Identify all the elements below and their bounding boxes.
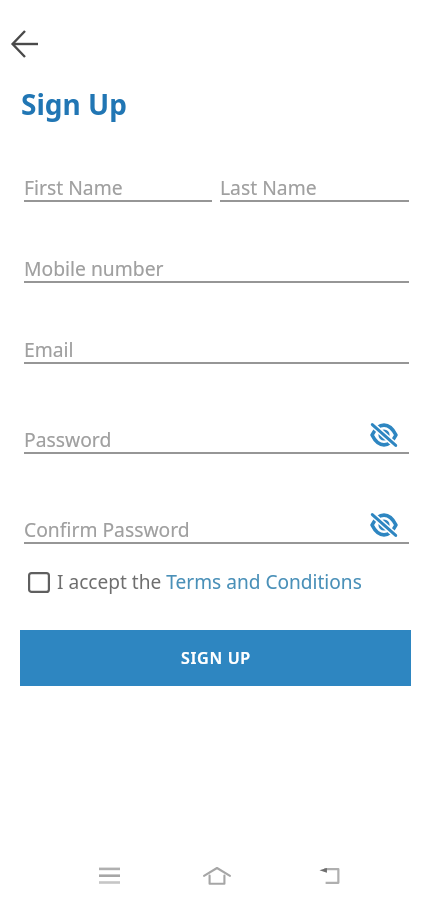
button[interactable]: Toggle password visibility (363, 414, 405, 456)
staticText: Confirm Password (24, 516, 190, 542)
staticText: Mobile number (24, 255, 164, 281)
button[interactable]: Back (4, 23, 46, 65)
button[interactable]: Email (24, 317, 409, 364)
button[interactable]: Recent apps (85, 852, 133, 900)
staticText: Last Name (220, 174, 317, 200)
button[interactable]: Back (306, 852, 354, 900)
button[interactable]: I accept the Terms and Conditions (28, 568, 362, 596)
button[interactable]: Toggle password visibility (363, 504, 405, 546)
button[interactable]: Password (24, 407, 409, 454)
button[interactable]: Mobile number (24, 236, 409, 283)
button[interactable]: Home (193, 852, 241, 900)
staticText: First Name (24, 174, 123, 200)
staticText: Password (24, 426, 112, 452)
button[interactable]: First Name (24, 155, 212, 202)
staticText: I accept the Terms and Conditions (57, 569, 362, 595)
button[interactable]: SIGN UP (20, 630, 411, 686)
staticText: SIGN UP (181, 647, 251, 669)
staticText: Email (24, 336, 74, 362)
staticText: Sign Up (21, 85, 127, 123)
button[interactable]: Confirm Password (24, 497, 409, 544)
button[interactable]: Last Name (220, 155, 409, 202)
